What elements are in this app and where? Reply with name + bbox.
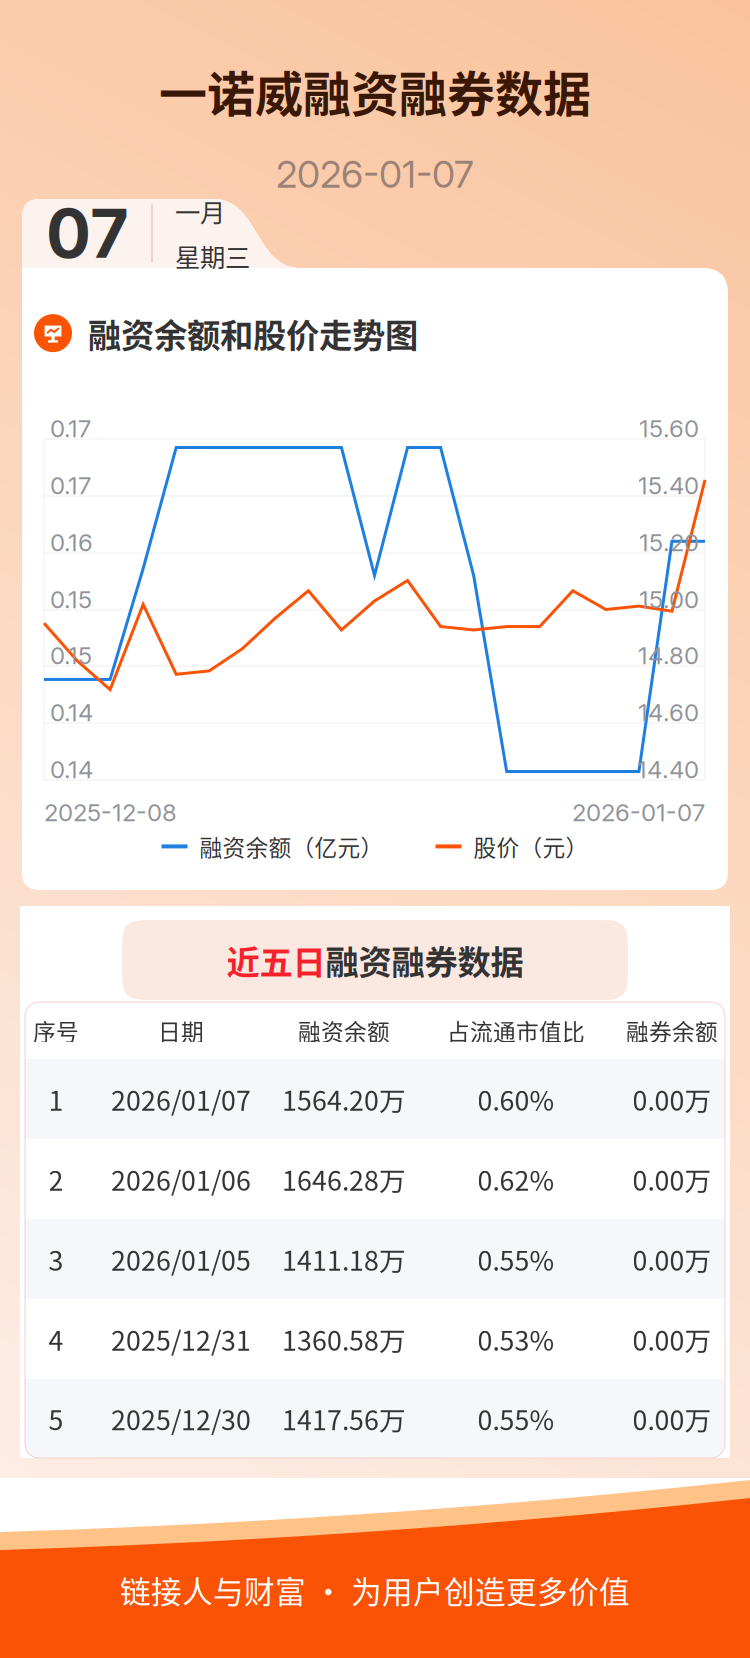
staticText: 日期 [158,1014,204,1047]
staticText: 0.00万 [632,1080,711,1118]
staticText: 2026-01-07 [276,151,474,197]
staticText: 2025-12-08 [44,798,177,827]
staticText: 融资余额和股价走势图 [88,309,418,357]
staticText: 2 [48,1160,63,1198]
staticText: 0.55% [477,1399,554,1438]
staticText: 0.15 [50,641,92,670]
staticText: 2026/01/06 [111,1160,251,1198]
staticText: 1360.58万 [282,1320,406,1358]
staticText: 3 [48,1240,63,1278]
staticText: 0.00万 [632,1160,711,1198]
staticText: 0.14 [50,698,93,727]
staticText: 一月 [175,193,225,229]
staticText: 2026/01/07 [111,1080,251,1118]
staticText: 1564.20万 [282,1080,406,1118]
staticText: 星期三 [175,237,250,274]
staticText: 0.15 [50,585,92,614]
staticText: 14.60 [638,698,699,727]
staticText: 融资余额（亿元） [199,830,383,863]
staticText: 0.14 [50,755,93,784]
staticText: 一诺威融资融券数据 [159,56,591,125]
staticText: 股价（元） [473,830,588,863]
staticText: 0.62% [477,1160,554,1198]
staticText: 15.00 [639,585,699,614]
staticText: 14.40 [637,755,699,784]
staticText: 0.53% [477,1320,554,1358]
staticText: 融资融券数据 [325,936,523,984]
staticText: 07 [46,193,129,274]
staticText: 14.80 [638,641,699,670]
staticText: 2025/12/31 [111,1320,251,1358]
staticText: 1646.28万 [282,1160,406,1198]
staticText: 0.17 [50,414,91,443]
staticText: 0.17 [50,471,91,500]
staticText: 15.20 [639,528,699,557]
staticText: 近五日 [226,936,325,984]
staticText: 2026-01-07 [572,798,705,827]
staticText: 15.60 [639,414,699,443]
staticText: 4 [48,1320,63,1358]
staticText: 0.00万 [632,1240,711,1278]
staticText: 1411.18万 [282,1240,406,1278]
staticText: 融资余额 [298,1014,390,1047]
staticText: 2025/12/30 [111,1399,251,1438]
staticText: 0.60% [477,1080,554,1118]
staticText: 0.00万 [632,1320,711,1358]
staticText: 15.40 [638,471,699,500]
staticText: 0.16 [50,528,93,557]
staticText: 1 [48,1080,63,1118]
staticText: 0.55% [477,1240,554,1278]
staticText: 序号 [33,1014,79,1047]
staticText: 1417.56万 [282,1399,406,1438]
staticText: 5 [48,1399,63,1438]
staticText: 融券余额 [626,1014,718,1047]
staticText: 链接人与财富 · 为用户创造更多价值 [120,1568,630,1612]
staticText: 占流通市值比 [447,1014,585,1047]
staticText: 2026/01/05 [111,1240,251,1278]
staticText: 0.00万 [632,1399,711,1438]
